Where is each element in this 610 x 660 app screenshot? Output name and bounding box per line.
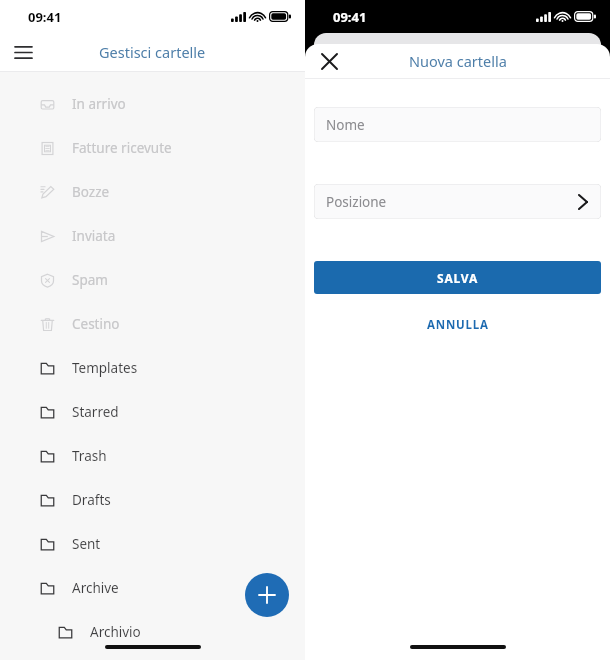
button[interactable]: Fatture ricevute bbox=[0, 126, 305, 170]
button[interactable]: Archive bbox=[0, 566, 305, 610]
button[interactable]: Cestino bbox=[0, 302, 305, 346]
staticText: 09:41 bbox=[28, 8, 62, 26]
staticText: Fatture ricevute bbox=[72, 139, 172, 157]
staticText: 09:41 bbox=[333, 8, 367, 26]
staticText: Templates bbox=[72, 359, 138, 377]
button[interactable]: Trash bbox=[0, 434, 305, 478]
button[interactable]: Spam bbox=[0, 258, 305, 302]
staticText: In arrivo bbox=[72, 95, 126, 113]
staticText: Posizione bbox=[326, 193, 387, 211]
staticText: Trash bbox=[72, 447, 107, 465]
staticText: ANNULLA bbox=[427, 317, 489, 333]
button[interactable]: Chiudi bbox=[314, 46, 344, 76]
button[interactable]: Starred bbox=[0, 390, 305, 434]
staticText: Spam bbox=[72, 271, 108, 289]
staticText: Drafts bbox=[72, 491, 111, 509]
staticText: Inviata bbox=[72, 227, 116, 245]
staticText: Nome bbox=[326, 116, 365, 134]
staticText: SALVA bbox=[437, 270, 479, 286]
button[interactable]: Inviata bbox=[0, 214, 305, 258]
staticText: Archivio bbox=[90, 623, 141, 641]
button[interactable]: Bozze bbox=[0, 170, 305, 214]
button[interactable]: Nuova cartella bbox=[245, 573, 289, 617]
staticText: Starred bbox=[72, 403, 119, 421]
staticText: Nuova cartella bbox=[409, 51, 507, 71]
button[interactable]: Menu bbox=[6, 35, 40, 69]
button[interactable]: Archivio bbox=[0, 610, 305, 654]
button[interactable]: Nome bbox=[314, 107, 601, 142]
button[interactable]: Templates bbox=[0, 346, 305, 390]
button[interactable]: Posizione bbox=[314, 184, 601, 219]
button[interactable]: In arrivo bbox=[0, 82, 305, 126]
button[interactable]: ANNULLA bbox=[413, 312, 503, 338]
staticText: Sent bbox=[72, 535, 101, 553]
staticText: Cestino bbox=[72, 315, 120, 333]
staticText: Gestisci cartelle bbox=[99, 42, 206, 62]
button[interactable]: SALVA bbox=[314, 261, 601, 294]
button[interactable]: Sent bbox=[0, 522, 305, 566]
button[interactable]: Drafts bbox=[0, 478, 305, 522]
staticText: Bozze bbox=[72, 183, 110, 201]
staticText: Archive bbox=[72, 579, 119, 597]
